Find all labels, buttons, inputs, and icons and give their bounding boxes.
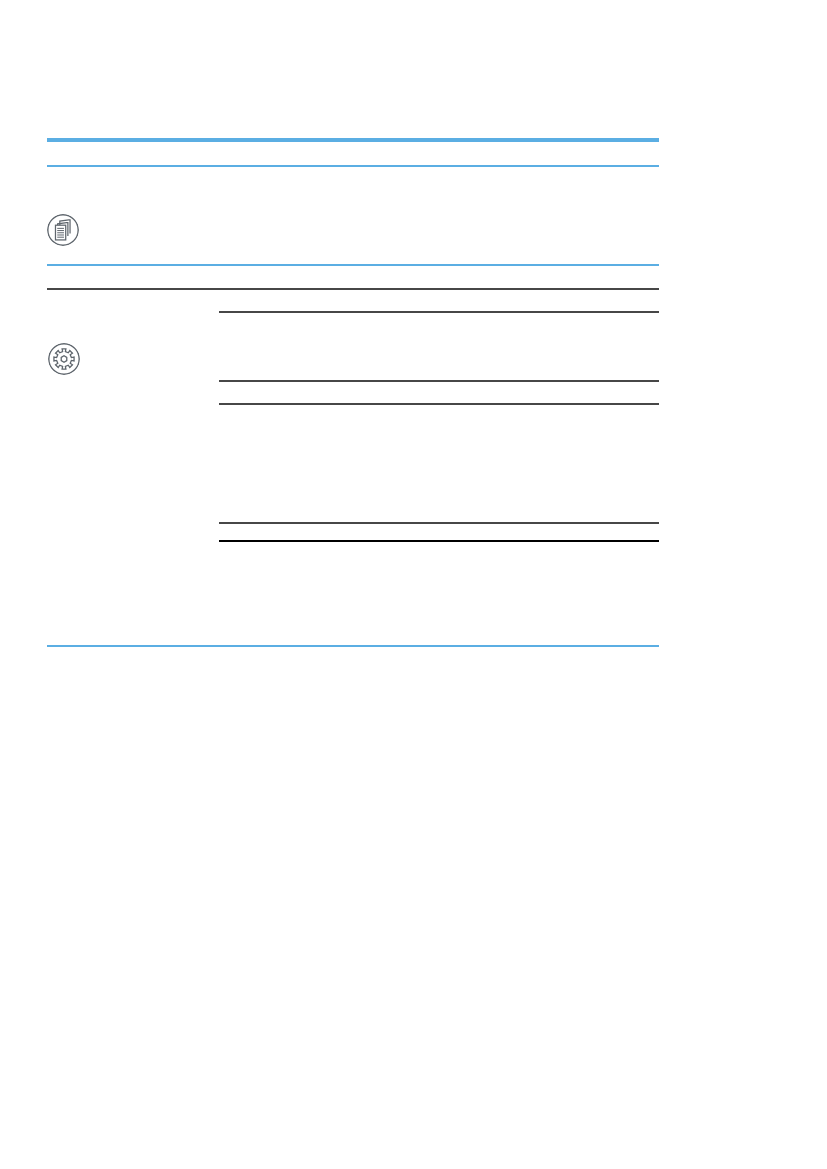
button[interactable]: Documents	[47, 180, 659, 256]
button[interactable]: Settings	[47, 320, 659, 378]
button[interactable]: Documents	[47, 214, 79, 246]
button[interactable]: Settings	[48, 343, 80, 375]
